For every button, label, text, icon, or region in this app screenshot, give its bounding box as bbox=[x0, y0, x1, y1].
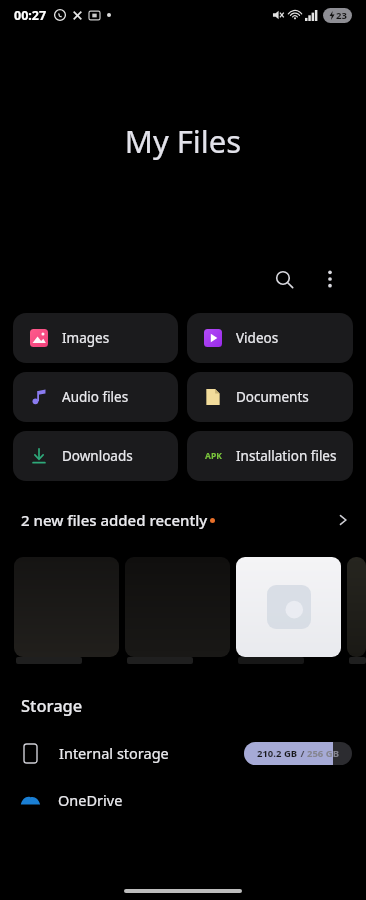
button[interactable]: Videos bbox=[187, 313, 353, 363]
staticText: OneDrive bbox=[58, 790, 123, 810]
staticText: Audio files bbox=[62, 388, 129, 406]
button[interactable]: Audio files bbox=[13, 372, 178, 422]
button[interactable]: Images bbox=[13, 313, 178, 363]
staticText: 256 GB bbox=[307, 747, 339, 760]
staticText: Downloads bbox=[62, 447, 133, 465]
staticText: 210.2 GB bbox=[257, 747, 298, 760]
button[interactable]: Search bbox=[262, 257, 306, 301]
button[interactable]: More options bbox=[308, 257, 352, 301]
staticText: Videos bbox=[236, 329, 279, 347]
button[interactable]: APK bbox=[187, 431, 353, 481]
staticText: Images bbox=[62, 329, 110, 347]
staticText: Storage bbox=[21, 694, 83, 716]
staticText: Installation files bbox=[236, 447, 337, 465]
button[interactable]: Documents bbox=[187, 372, 353, 422]
staticText: 23 bbox=[336, 9, 347, 22]
button[interactable] bbox=[14, 548, 119, 666]
button[interactable]: OneDrive bbox=[0, 783, 366, 817]
staticText: Internal storage bbox=[59, 743, 169, 763]
staticText: 2 new files added recently bbox=[21, 510, 208, 530]
button[interactable]: Internal storage bbox=[0, 736, 366, 770]
button[interactable]: Downloads bbox=[13, 431, 178, 481]
staticText: Documents bbox=[236, 388, 309, 406]
staticText: APK bbox=[205, 450, 222, 462]
button[interactable] bbox=[125, 548, 230, 666]
staticText: / bbox=[298, 747, 307, 760]
staticText: My Files bbox=[0, 120, 366, 162]
staticText: 00:27 bbox=[14, 7, 47, 24]
button[interactable] bbox=[236, 548, 341, 666]
button[interactable]: 2 new files added recently bbox=[0, 504, 366, 536]
button[interactable] bbox=[347, 548, 366, 666]
